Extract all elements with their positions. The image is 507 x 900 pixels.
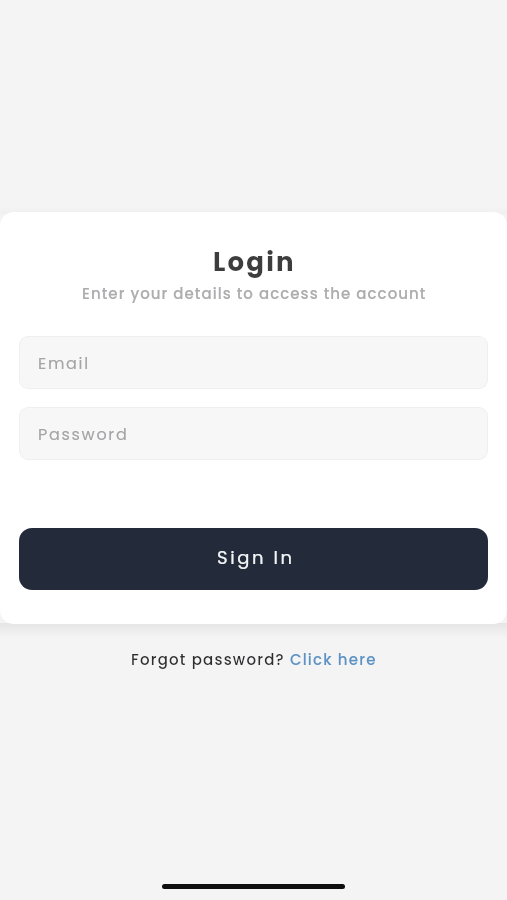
button[interactable]: Password [19,407,488,460]
button[interactable]: Sign In [19,528,488,590]
other: Home gesture handle [162,884,345,889]
button[interactable]: Forgot password? Click here [125,645,383,674]
staticText: Enter your details to access the account [82,283,427,304]
staticText: Forgot password? Click here [131,649,377,670]
staticText: Password [38,423,129,445]
button[interactable]: Email [19,336,488,389]
staticText: Login [213,244,296,280]
staticText: Sign In [217,545,295,570]
staticText: Email [38,352,90,374]
